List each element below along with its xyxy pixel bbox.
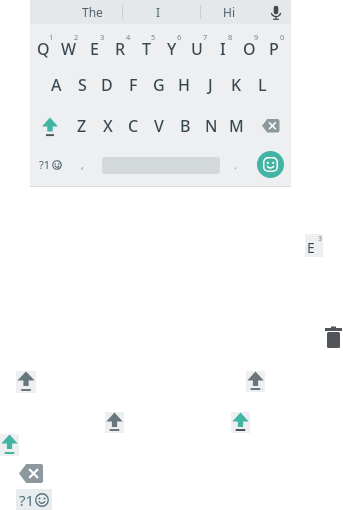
button[interactable]: P: [261, 37, 287, 61]
button[interactable]: R: [107, 37, 133, 61]
button[interactable]: [105, 412, 124, 433]
staticText: 5: [151, 32, 156, 42]
button[interactable]: Z: [69, 114, 95, 138]
staticText: C: [128, 115, 139, 137]
button[interactable]: F: [120, 73, 146, 97]
button[interactable]: T: [133, 37, 159, 61]
staticText: 8: [228, 32, 233, 42]
staticText: .: [234, 157, 237, 172]
button[interactable]: [246, 371, 265, 392]
staticText: U: [191, 38, 203, 60]
staticText: 2: [74, 32, 79, 42]
button[interactable]: [265, 1, 287, 23]
button[interactable]: N: [198, 114, 224, 138]
button[interactable]: Y: [159, 37, 185, 61]
button[interactable]: C: [120, 114, 146, 138]
staticText: E: [90, 38, 99, 60]
button[interactable]: .: [228, 152, 242, 176]
staticText: T: [142, 38, 151, 60]
staticText: 9: [254, 32, 259, 42]
button[interactable]: S: [69, 73, 95, 97]
staticText: 0: [280, 32, 285, 42]
staticText: H: [178, 74, 190, 96]
staticText: ?1: [39, 157, 51, 172]
button[interactable]: G: [146, 73, 172, 97]
staticText: I: [156, 4, 161, 20]
button[interactable]: The: [72, 0, 112, 24]
staticText: 3: [100, 32, 105, 42]
staticText: S: [78, 74, 87, 96]
button[interactable]: [231, 412, 250, 433]
staticText: B: [180, 115, 191, 137]
button[interactable]: I: [210, 37, 236, 61]
button[interactable]: ?1: [16, 489, 52, 510]
staticText: M: [229, 115, 244, 137]
button[interactable]: ,: [75, 152, 89, 176]
staticText: The: [82, 4, 103, 20]
button[interactable]: O: [236, 37, 262, 61]
button[interactable]: H: [171, 73, 197, 97]
button[interactable]: V: [146, 114, 172, 138]
button[interactable]: L: [249, 73, 275, 97]
staticText: F: [129, 74, 138, 96]
staticText: P: [269, 38, 279, 60]
staticText: Z: [77, 115, 87, 137]
button[interactable]: E: [81, 37, 107, 61]
staticText: E: [307, 238, 315, 257]
button[interactable]: [16, 371, 36, 393]
button[interactable]: E: [305, 234, 323, 257]
staticText: N: [205, 115, 218, 137]
staticText: 7: [203, 32, 208, 42]
staticText: 4: [126, 32, 131, 42]
button[interactable]: W: [56, 37, 82, 61]
staticText: A: [51, 74, 62, 96]
staticText: X: [103, 115, 113, 137]
button[interactable]: [257, 151, 284, 178]
staticText: 6: [177, 32, 182, 42]
staticText: 3: [318, 234, 323, 244]
button[interactable]: [324, 325, 343, 349]
button[interactable]: B: [172, 114, 198, 138]
staticText: W: [61, 38, 77, 60]
button[interactable]: Q: [30, 37, 56, 61]
staticText: R: [115, 38, 126, 60]
staticText: I: [220, 38, 226, 60]
button[interactable]: [256, 114, 286, 138]
staticText: Hi: [223, 4, 235, 20]
button[interactable]: ?1: [26, 152, 74, 176]
button[interactable]: A: [43, 73, 69, 97]
staticText: O: [243, 38, 256, 60]
staticText: J: [208, 74, 213, 96]
staticText: 1: [49, 32, 54, 42]
button[interactable]: [0, 434, 19, 456]
staticText: L: [258, 74, 267, 96]
staticText: G: [153, 74, 165, 96]
staticText: ?1: [19, 490, 35, 510]
button[interactable]: X: [95, 114, 121, 138]
staticText: V: [154, 115, 164, 137]
button[interactable]: [36, 114, 64, 138]
button[interactable]: D: [94, 73, 120, 97]
staticText: Y: [167, 38, 177, 60]
button[interactable]: I: [138, 0, 178, 24]
button[interactable]: M: [223, 114, 249, 138]
button[interactable]: K: [223, 73, 249, 97]
button[interactable]: J: [197, 73, 223, 97]
staticText: Q: [37, 38, 50, 60]
staticText: K: [231, 74, 242, 96]
staticText: D: [101, 74, 113, 96]
button[interactable]: Hi: [209, 0, 249, 24]
button[interactable]: U: [184, 37, 210, 61]
button[interactable]: [19, 464, 43, 483]
staticText: ,: [81, 157, 84, 172]
